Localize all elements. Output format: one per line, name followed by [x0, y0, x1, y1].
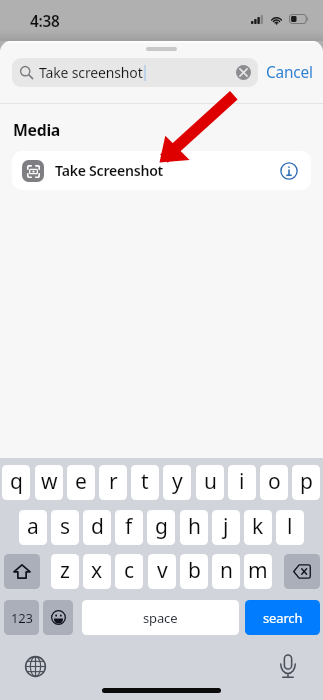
button[interactable]: u: [196, 465, 224, 500]
button[interactable]: h: [180, 510, 208, 545]
button[interactable]: d: [83, 510, 111, 545]
staticText: i: [239, 467, 245, 496]
staticText: c: [124, 556, 135, 585]
button[interactable]: Cancel: [264, 58, 314, 87]
staticText: e: [75, 467, 87, 496]
staticText: 4:38: [30, 11, 60, 32]
button[interactable]: g: [147, 510, 175, 545]
staticText: f: [125, 512, 133, 541]
staticText: x: [91, 556, 103, 585]
staticText: Media: [13, 119, 60, 141]
staticText: b: [188, 556, 201, 585]
staticText: p: [300, 467, 313, 496]
button[interactable]: x: [83, 554, 111, 589]
staticText: t: [141, 467, 149, 496]
staticText: a: [27, 512, 39, 541]
button[interactable]: Clear text: [236, 65, 251, 80]
button[interactable]: a: [19, 510, 47, 545]
button[interactable]: 123: [4, 600, 39, 635]
button[interactable]: Change keyboard language: [23, 654, 47, 678]
button[interactable]: b: [180, 554, 208, 589]
button[interactable]: f: [115, 510, 143, 545]
staticText: u: [204, 467, 217, 496]
button[interactable]: v: [148, 554, 176, 589]
staticText: w: [41, 467, 58, 496]
staticText: l: [287, 512, 293, 541]
button[interactable]: z: [51, 554, 79, 589]
button[interactable]: Info: [280, 162, 298, 180]
staticText: d: [91, 512, 104, 541]
button[interactable]: t: [131, 465, 159, 500]
staticText: 123: [11, 609, 33, 627]
button[interactable]: Shift: [4, 554, 40, 589]
staticText: Cancel: [266, 62, 313, 83]
staticText: v: [157, 556, 168, 585]
staticText: r: [109, 467, 118, 496]
button[interactable]: Backspace: [284, 554, 320, 589]
button[interactable]: space: [82, 600, 239, 635]
button[interactable]: i: [228, 465, 256, 500]
button[interactable]: k: [244, 510, 272, 545]
staticText: search: [263, 609, 303, 627]
button[interactable]: e: [67, 465, 95, 500]
button[interactable]: q: [2, 465, 30, 500]
staticText: z: [60, 556, 70, 585]
staticText: s: [60, 512, 71, 541]
button[interactable]: w: [35, 465, 63, 500]
staticText: g: [155, 512, 168, 541]
button[interactable]: s: [51, 510, 79, 545]
button[interactable]: y: [163, 465, 191, 500]
staticText: Take screenshot: [39, 63, 143, 82]
staticText: h: [188, 512, 201, 541]
staticText: Take Screenshot: [55, 161, 164, 180]
button[interactable]: Emoji: [43, 600, 73, 635]
staticText: o: [268, 467, 281, 496]
button[interactable]: search: [245, 600, 320, 635]
button[interactable]: Take screenshot: [12, 58, 258, 87]
button[interactable]: Dictate: [276, 652, 300, 680]
staticText: space: [143, 609, 178, 627]
button[interactable]: Take Screenshot: [12, 151, 311, 190]
staticText: j: [223, 512, 229, 541]
button[interactable]: j: [212, 510, 240, 545]
button[interactable]: n: [212, 554, 240, 589]
button[interactable]: l: [276, 510, 304, 545]
staticText: k: [252, 512, 264, 541]
button[interactable]: m: [244, 554, 272, 589]
button[interactable]: c: [115, 554, 143, 589]
button[interactable]: r: [99, 465, 127, 500]
button[interactable]: p: [292, 465, 320, 500]
button[interactable]: o: [260, 465, 288, 500]
staticText: y: [172, 467, 183, 496]
staticText: q: [10, 467, 23, 496]
staticText: n: [220, 556, 233, 585]
staticText: m: [248, 556, 268, 585]
